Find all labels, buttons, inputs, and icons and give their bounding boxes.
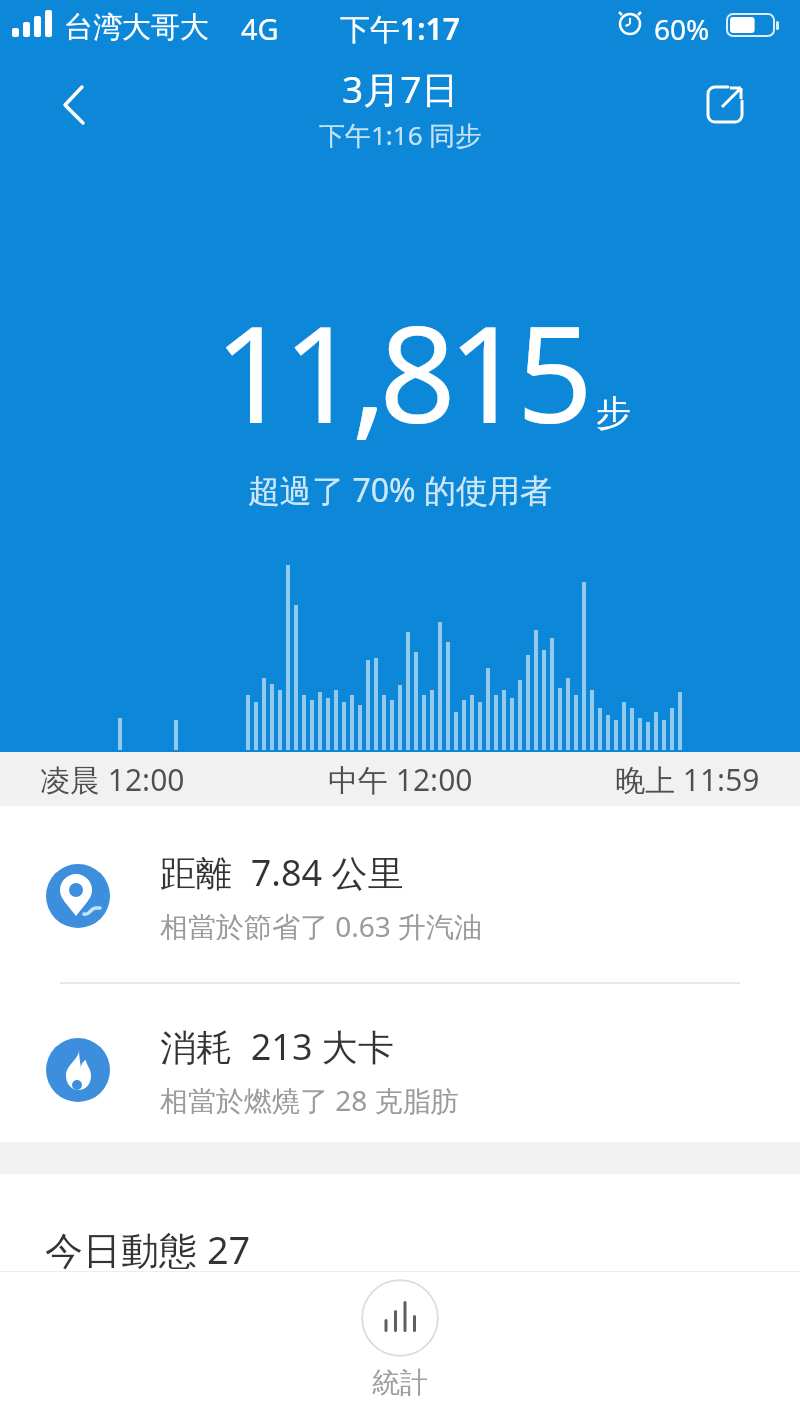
staticText: 相當於節省了 0.63 升汽油 [160, 907, 483, 945]
staticText: 距離 7.84 公里 [160, 848, 404, 897]
staticText: 凌晨 12:00 [40, 759, 185, 800]
button[interactable] [690, 72, 756, 138]
staticText: 4G [241, 9, 279, 48]
staticText: 超過了 70% 的使用者 [0, 468, 800, 512]
button[interactable]: 距離 7.84 公里 [0, 808, 800, 984]
staticText: 消耗 213 大卡 [160, 1022, 394, 1071]
staticText: 統計 [372, 1365, 428, 1400]
staticText: 步 [596, 391, 631, 435]
staticText: 台湾大哥大 [64, 9, 209, 46]
staticText: 60% [654, 10, 710, 48]
staticText: 中午 12:00 [328, 759, 473, 800]
staticText: 今日動態 27 [45, 1223, 251, 1275]
button[interactable]: 統計 [361, 1279, 439, 1400]
staticText: 3月7日 [342, 63, 459, 114]
staticText: 11,815 [214, 280, 586, 463]
button[interactable] [40, 70, 110, 140]
staticText: 下午1:17 [0, 8, 800, 49]
staticText: 下午1:16 同步 [319, 117, 482, 153]
button[interactable]: 消耗 213 大卡 [0, 995, 800, 1145]
staticText: 相當於燃燒了 28 克脂肪 [160, 1081, 459, 1119]
staticText: 晚上 11:59 [615, 759, 760, 800]
